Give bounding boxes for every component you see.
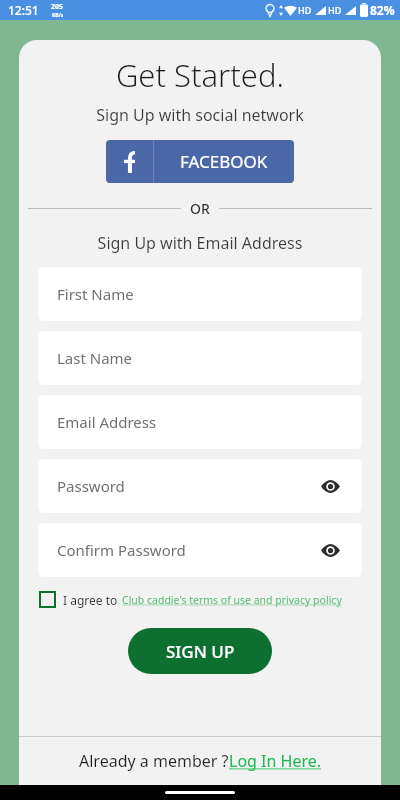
button[interactable]: FACEBOOK <box>106 140 294 183</box>
button[interactable]: Show password <box>317 473 343 499</box>
staticText: Club caddie's terms of use and privacy p… <box>122 593 342 607</box>
button[interactable]: I agree checkbox <box>39 591 56 608</box>
staticText: Log In Here. <box>229 750 322 772</box>
button[interactable]: Already a member ? <box>79 750 322 772</box>
staticText: HD <box>328 4 342 16</box>
staticText: 12:51 <box>8 2 39 18</box>
button[interactable]: First Name <box>38 267 362 321</box>
staticText: Sign Up with Email Address <box>19 232 381 254</box>
staticText: SIGN UP <box>166 640 235 663</box>
staticText: Last Name <box>57 348 133 368</box>
staticText: Get Started. <box>19 54 381 96</box>
button[interactable]: Password <box>38 459 362 513</box>
staticText: FACEBOOK <box>180 150 268 173</box>
button[interactable]: Club caddie's terms of use and privacy p… <box>122 593 342 607</box>
staticText: Confirm Password <box>57 540 186 560</box>
button[interactable]: Show password <box>317 537 343 563</box>
staticText: Already a member ? <box>79 750 229 772</box>
staticText: Password <box>57 476 125 496</box>
staticText: Sign Up with social network <box>19 104 381 126</box>
staticText: KB/s <box>52 12 64 19</box>
staticText: 82% <box>370 2 395 18</box>
staticText: OR <box>190 199 210 218</box>
staticText: HD <box>298 4 312 16</box>
staticText: I agree to <box>63 592 118 608</box>
staticText: Email Address <box>57 412 157 432</box>
button[interactable]: Email Address <box>38 395 362 449</box>
staticText: 205 <box>51 2 64 12</box>
button[interactable]: Confirm Password <box>38 523 362 577</box>
button[interactable]: Last Name <box>38 331 362 385</box>
staticText: First Name <box>57 284 134 304</box>
button[interactable]: SIGN UP <box>128 628 272 674</box>
